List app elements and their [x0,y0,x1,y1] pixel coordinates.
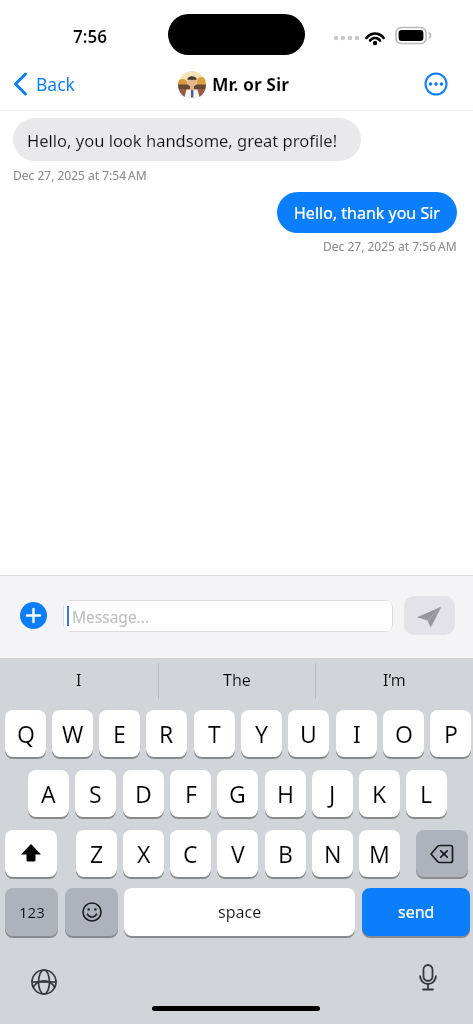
staticText: I [353,718,361,749]
button[interactable]: L [406,770,447,817]
button[interactable]: 123 [5,888,58,936]
button[interactable]: W [52,710,93,757]
button[interactable]: T [194,710,235,757]
button[interactable]: F [170,770,211,817]
staticText: V [231,838,245,869]
button[interactable]: C [170,830,211,877]
button[interactable]: P [430,710,471,757]
button[interactable]: M [359,830,400,877]
staticText: Z [90,838,104,869]
staticText: W [62,718,84,749]
staticText: M [369,838,390,869]
button[interactable]: Back [8,68,98,100]
staticText: P [444,718,458,749]
button[interactable]: X [123,830,164,877]
staticText: O [395,718,413,749]
button[interactable]: G [217,770,258,817]
button[interactable]: space [124,888,355,936]
staticText: S [89,778,102,809]
button[interactable]: D [123,770,164,817]
button[interactable] [5,830,57,877]
staticText: E [113,718,126,749]
button[interactable]: O [383,710,424,757]
button[interactable]: I [0,658,158,702]
staticText: G [229,778,246,809]
staticText: Back [36,72,75,96]
button[interactable]: N [312,830,353,877]
staticText: send [398,901,435,923]
staticText: L [420,778,433,809]
button[interactable] [20,602,47,629]
button[interactable]: V [217,830,258,877]
button[interactable]: I’m [315,658,473,702]
staticText: Hello, thank you Sir [294,202,440,224]
staticText: J [329,778,336,809]
button[interactable] [404,596,455,635]
staticText: Q [17,718,35,749]
staticText: B [278,838,293,869]
button[interactable]: S [75,770,116,817]
staticText: Dec 27, 2025 at 7:54 AM [13,167,147,183]
staticText: R [159,718,174,749]
staticText: Message... [72,606,150,627]
staticText: K [372,778,387,809]
staticText: C [183,838,198,869]
staticText: Mr. or Sir [212,72,289,96]
staticText: I [76,669,82,691]
staticText: D [135,778,152,809]
staticText: 123 [19,902,45,922]
button[interactable]: I [336,710,377,757]
button[interactable]: B [265,830,306,877]
staticText: U [300,718,317,749]
button[interactable]: A [28,770,69,817]
button[interactable]: U [288,710,329,757]
button[interactable] [65,888,118,936]
button[interactable] [413,962,443,1000]
staticText: Hello, you look handsome, great profile! [27,129,338,151]
button[interactable]: H [265,770,306,817]
button[interactable] [28,966,60,998]
button[interactable]: send [362,888,470,936]
button[interactable]: Z [76,830,117,877]
button[interactable]: The [158,658,315,702]
staticText: Y [255,718,269,749]
button[interactable]: J [312,770,353,817]
button[interactable] [416,830,468,877]
staticText: N [324,838,342,869]
staticText: The [223,669,251,691]
button[interactable]: K [359,770,400,817]
staticText: F [185,778,197,809]
button[interactable]: R [146,710,187,757]
button[interactable]: Y [241,710,282,757]
button[interactable]: Message... [63,600,393,632]
button[interactable] [424,72,448,96]
button[interactable]: Q [5,710,46,757]
staticText: T [208,718,221,749]
staticText: space [218,901,262,923]
staticText: Dec 27, 2025 at 7:56 AM [323,238,457,254]
staticText: 7:56 [73,25,107,47]
staticText: H [277,778,295,809]
button[interactable]: E [99,710,140,757]
staticText: X [137,838,151,869]
staticText: I’m [383,669,406,691]
staticText: A [41,778,56,809]
